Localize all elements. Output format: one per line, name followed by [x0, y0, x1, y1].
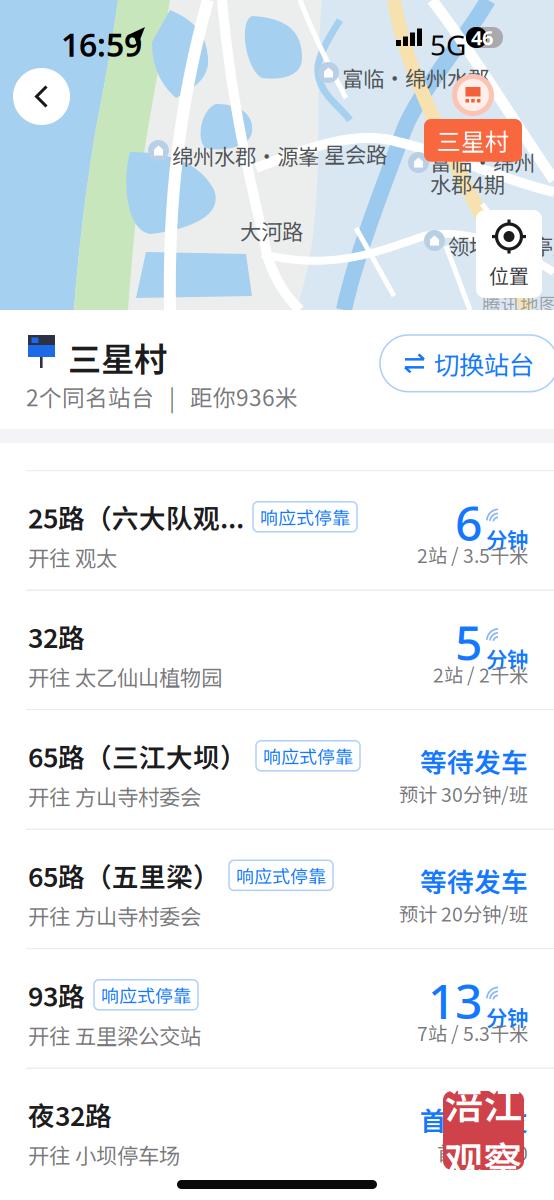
- staticText: 响应式停靠: [263, 743, 353, 769]
- staticText: 32路: [28, 617, 85, 656]
- staticText: 大河路: [240, 215, 303, 246]
- staticText: 响应式停靠: [101, 982, 191, 1008]
- staticText: 预计 30分钟/班: [399, 779, 528, 807]
- staticText: 65路（三江大坝）: [28, 736, 247, 775]
- staticText: 响应式停靠: [260, 504, 350, 530]
- button[interactable]: 25路（六大队观...: [0, 471, 554, 589]
- staticText: 腾讯地图: [482, 290, 554, 317]
- staticText: 位置: [489, 260, 529, 289]
- staticText: 5: [455, 610, 482, 674]
- staticText: 25路（六大队观...: [28, 497, 244, 536]
- staticText: 分钟: [486, 1001, 528, 1032]
- staticText: 开往 方山寺村委会: [28, 900, 201, 931]
- staticText: 预计 20分钟/班: [399, 899, 528, 927]
- staticText: 富临·绵州水郡: [342, 62, 489, 93]
- staticText: 93路: [28, 975, 85, 1014]
- staticText: 涪江: [444, 1074, 522, 1130]
- staticText: 响应式停靠: [236, 862, 326, 888]
- staticText: 开往 太乙仙山植物园: [28, 661, 222, 692]
- button[interactable]: 位置: [476, 210, 542, 298]
- staticText: 首班未发: [420, 1100, 528, 1139]
- staticText: 开往 观太: [28, 541, 117, 572]
- staticText: 开往 方山寺村委会: [28, 780, 201, 811]
- staticText: 7站 / 5.3千米: [417, 1018, 528, 1046]
- staticText: 水郡4期: [430, 168, 505, 199]
- staticText: 13: [428, 968, 482, 1032]
- staticText: 三星村: [437, 123, 509, 158]
- staticText: 观察: [444, 1130, 522, 1186]
- staticText: 16:59: [61, 23, 142, 65]
- staticText: 开往 五里梁公交站: [28, 1019, 201, 1050]
- staticText: 首班 19:30: [437, 1138, 528, 1166]
- button[interactable]: 返回: [13, 68, 70, 125]
- staticText: 5G: [430, 26, 466, 63]
- staticText: 领地·兰亭序: [448, 230, 554, 261]
- button[interactable]: 93路: [0, 949, 554, 1067]
- staticText: 星会路: [324, 138, 387, 169]
- staticText: 三星村: [68, 333, 167, 381]
- button[interactable]: 夜32路: [0, 1069, 554, 1187]
- staticText: 绵州水郡·源峯: [172, 140, 319, 171]
- staticText: 2站 / 2千米: [433, 660, 528, 688]
- staticText: 65路（五里梁）: [28, 856, 220, 895]
- button[interactable]: 切换站台: [380, 335, 554, 392]
- button[interactable]: 65路（三江大坝）: [0, 710, 554, 828]
- staticText: 6: [455, 490, 482, 554]
- staticText: 2个同名站台 | 距你936米: [26, 380, 298, 413]
- staticText: 2站 / 3.5千米: [417, 540, 528, 568]
- staticText: 夜32路: [28, 1095, 112, 1134]
- staticText: 等待发车: [420, 741, 528, 780]
- staticText: 分钟: [486, 643, 528, 674]
- button[interactable]: 65路（五里梁）: [0, 830, 554, 948]
- staticText: 46: [471, 24, 493, 51]
- button[interactable]: 32路: [0, 591, 554, 709]
- staticText: 分钟: [486, 523, 528, 554]
- staticText: 开往 小坝停车场: [28, 1139, 180, 1170]
- staticText: 切换站台: [434, 345, 534, 382]
- staticText: 富临·绵州: [430, 146, 535, 177]
- staticText: 等待发车: [420, 861, 528, 900]
